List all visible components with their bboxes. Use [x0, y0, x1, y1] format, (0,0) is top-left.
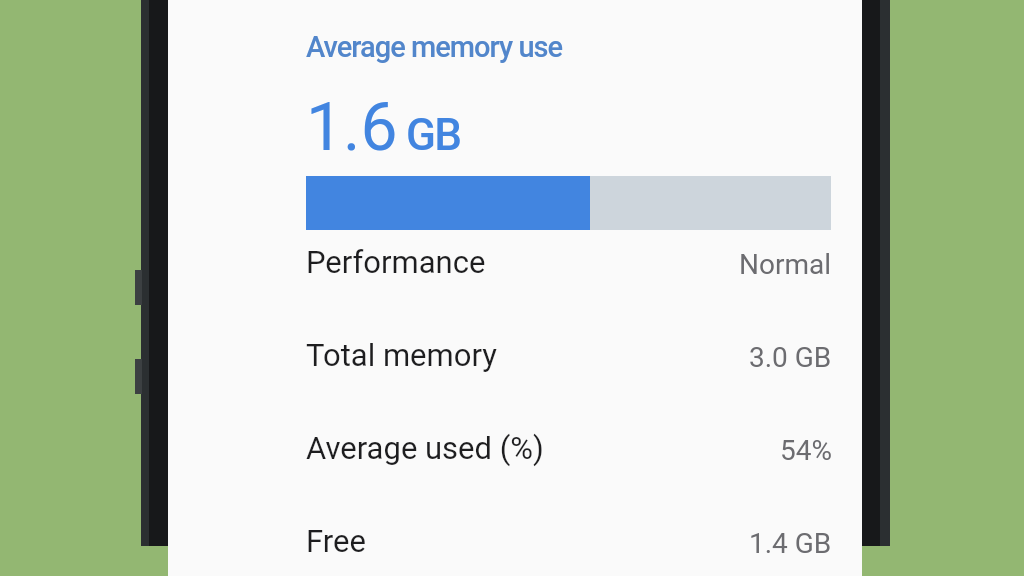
staticText: 1.6 — [306, 89, 398, 166]
staticText: Average used (%) — [306, 430, 544, 466]
button[interactable]: Total memory — [168, 308, 862, 401]
staticText: 54% — [780, 434, 832, 467]
staticText: Normal — [739, 248, 832, 281]
button[interactable]: Average used (%) — [168, 401, 862, 494]
staticText: Performance — [306, 244, 486, 280]
button[interactable]: Performance — [168, 215, 862, 308]
staticText: 1.4 GB — [749, 527, 832, 560]
staticText: Free — [306, 523, 366, 559]
staticText: 3.0 GB — [749, 341, 832, 374]
staticText: Average memory use — [306, 30, 563, 64]
staticText: GB — [406, 109, 461, 161]
staticText: Total memory — [306, 337, 497, 373]
button[interactable]: Free — [168, 494, 862, 576]
